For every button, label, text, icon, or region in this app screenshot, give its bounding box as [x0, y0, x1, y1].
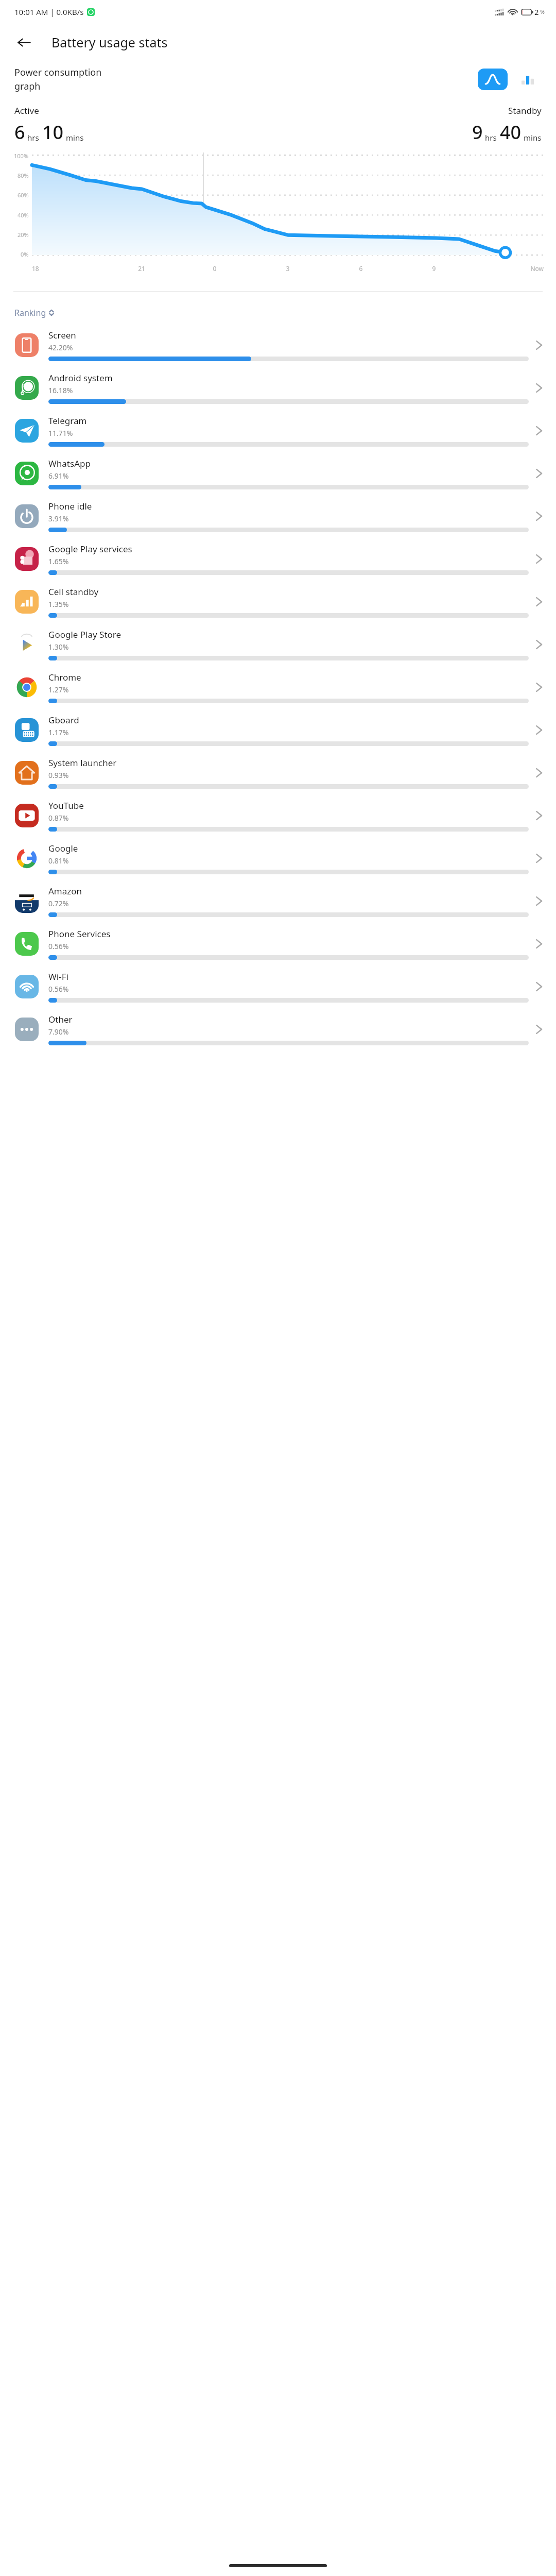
staticText: 60% [18, 191, 29, 199]
staticText: Wi-Fi [48, 971, 68, 982]
button[interactable]: Back [11, 30, 36, 55]
staticText: Google [48, 842, 78, 854]
staticText: 11.71% [48, 428, 73, 438]
staticText: Screen [48, 329, 76, 341]
staticText: 3.91% [48, 514, 69, 523]
staticText: Ranking [14, 307, 46, 318]
staticText: Phone idle [48, 500, 92, 512]
button[interactable]: Android system [0, 366, 556, 409]
staticText: WhatsApp [48, 457, 91, 469]
staticText: 21 [105, 264, 178, 273]
button[interactable]: WhatsApp [0, 452, 556, 495]
staticText: 1.27% [48, 685, 69, 694]
staticText: 3 [251, 264, 324, 273]
button[interactable]: Amazon [0, 879, 556, 922]
button[interactable]: System launcher [0, 751, 556, 794]
staticText: 9 [397, 264, 471, 273]
button[interactable]: Ranking [14, 307, 556, 318]
button[interactable]: Wi-Fi [0, 965, 556, 1008]
staticText: Google Play Store [48, 629, 121, 640]
staticText: 6 [14, 120, 25, 145]
staticText: 0.56% [48, 941, 69, 951]
staticText: 100% [14, 152, 29, 160]
staticText: mins [524, 132, 542, 143]
button[interactable]: Bar graph [513, 69, 543, 90]
staticText: mins [66, 132, 84, 143]
staticText: 1.65% [48, 556, 69, 566]
staticText: 20% [18, 231, 29, 239]
button[interactable]: Chrome [0, 666, 556, 708]
button[interactable]: Telegram [0, 409, 556, 452]
staticText: 42.20% [48, 343, 73, 352]
staticText: Power consumption graph [14, 66, 478, 92]
button[interactable]: Google Play Store [0, 623, 556, 666]
button[interactable]: Other [0, 1008, 556, 1050]
button[interactable]: Line graph [478, 69, 508, 90]
staticText: 0% [21, 250, 29, 258]
staticText: YouTube [48, 800, 84, 811]
staticText: hrs [485, 132, 497, 143]
staticText: 1.35% [48, 599, 69, 609]
staticText: Standby [508, 105, 542, 116]
staticText: Chrome [48, 671, 81, 683]
staticText: 1.17% [48, 727, 69, 737]
staticText: Active [14, 105, 39, 116]
staticText: Google Play services [48, 543, 132, 555]
staticText: % [539, 8, 545, 15]
staticText: 0.56% [48, 984, 69, 994]
staticText: 6.91% [48, 471, 69, 481]
staticText: 0.72% [48, 899, 69, 908]
staticText: Other [48, 1013, 73, 1025]
button[interactable]: YouTube [0, 794, 556, 837]
staticText: 9 [472, 120, 483, 145]
staticText: System launcher [48, 757, 117, 769]
button[interactable]: Phone Services [0, 922, 556, 965]
staticText: Android system [48, 372, 113, 384]
staticText: 18 [32, 264, 105, 273]
staticText: 2 [534, 7, 539, 17]
staticText: Now [471, 264, 544, 273]
button[interactable]: Phone idle [0, 495, 556, 537]
staticText: Phone Services [48, 928, 111, 940]
button[interactable]: Cell standby [0, 580, 556, 623]
staticText: Gboard [48, 714, 79, 726]
staticText: 0.93% [48, 770, 69, 780]
staticText: Battery usage stats [51, 33, 168, 51]
button[interactable]: Google Play services [0, 537, 556, 580]
staticText: 0.87% [48, 813, 69, 823]
button[interactable]: Google [0, 837, 556, 879]
staticText: Amazon [48, 885, 82, 897]
staticText: 0.81% [48, 856, 69, 866]
staticText: 0 [178, 264, 251, 273]
staticText: 40 [500, 120, 522, 145]
staticText: 6 [324, 264, 397, 273]
staticText: 16.18% [48, 385, 73, 395]
staticText: 40% [18, 211, 29, 219]
staticText: Telegram [48, 415, 87, 427]
staticText: hrs [27, 132, 39, 143]
button[interactable]: Gboard [0, 708, 556, 751]
staticText: 10:01 AM | 0.0KB/s [14, 7, 84, 17]
button[interactable]: Screen [0, 324, 556, 366]
staticText: 7.90% [48, 1027, 69, 1037]
staticText: 80% [18, 172, 29, 179]
staticText: 10 [42, 120, 64, 145]
staticText: 1.30% [48, 642, 69, 652]
staticText: Cell standby [48, 586, 99, 598]
